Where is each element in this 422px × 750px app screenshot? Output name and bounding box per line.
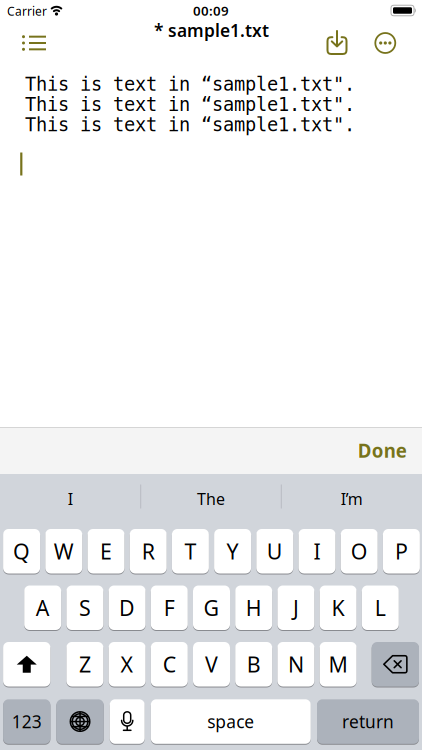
staticText: P <box>395 537 408 565</box>
button[interactable]: U <box>256 529 293 573</box>
button[interactable]: K <box>320 585 357 630</box>
button[interactable]: space <box>151 699 311 744</box>
staticText: I <box>313 537 320 565</box>
staticText: This is text in “sample1.txt". <box>25 114 355 135</box>
button[interactable]: Dictate <box>110 699 145 744</box>
staticText: H <box>246 594 262 622</box>
staticText: Z <box>79 650 91 678</box>
staticText: space <box>207 710 254 733</box>
button[interactable]: The <box>146 479 276 519</box>
button[interactable]: I <box>5 479 135 519</box>
button[interactable]: A <box>24 585 61 630</box>
staticText: J <box>293 594 299 622</box>
staticText: E <box>100 537 112 565</box>
button[interactable]: Shift <box>3 642 50 686</box>
staticText: G <box>203 594 219 622</box>
staticText: This is text in “sample1.txt". <box>25 94 355 115</box>
button[interactable]: return <box>317 699 419 744</box>
button[interactable]: P <box>383 529 420 573</box>
button[interactable]: C <box>151 642 188 686</box>
button[interactable]: D <box>109 585 146 630</box>
staticText: K <box>332 594 345 622</box>
staticText: Y <box>227 537 239 565</box>
staticText: L <box>375 594 386 622</box>
staticText: O <box>351 537 368 565</box>
button[interactable]: O <box>341 529 378 573</box>
button[interactable]: Delete <box>372 642 419 686</box>
staticText: F <box>164 594 175 622</box>
staticText: R <box>142 537 155 565</box>
button[interactable]: W <box>45 529 82 573</box>
staticText: return <box>342 710 394 733</box>
staticText: X <box>121 650 134 678</box>
button[interactable]: V <box>193 642 230 686</box>
staticText: N <box>288 650 304 678</box>
button[interactable]: M <box>320 642 357 686</box>
staticText: Q <box>13 537 30 565</box>
button[interactable]: F <box>151 585 188 630</box>
staticText: U <box>267 537 283 565</box>
staticText: This is text in “sample1.txt". <box>25 74 355 95</box>
staticText: D <box>119 594 135 622</box>
button[interactable]: 123 <box>3 699 50 744</box>
staticText: 123 <box>12 710 42 733</box>
button[interactable]: File list <box>16 28 52 57</box>
staticText: The <box>197 488 225 509</box>
button[interactable]: Y <box>214 529 251 573</box>
button[interactable]: More <box>370 28 400 58</box>
staticText: * sample1.txt <box>154 19 269 42</box>
button[interactable]: H <box>235 585 272 630</box>
button[interactable]: I’m <box>287 479 417 519</box>
button[interactable]: S <box>66 585 103 630</box>
staticText: C <box>163 650 176 678</box>
staticText: A <box>36 594 50 622</box>
button[interactable]: T <box>172 529 209 573</box>
staticText: T <box>184 537 196 565</box>
staticText: I’m <box>341 488 363 509</box>
staticText: V <box>205 650 218 678</box>
staticText: 00:09 <box>193 2 229 19</box>
button[interactable]: Done <box>346 427 419 474</box>
staticText: Done <box>358 438 407 463</box>
button[interactable]: R <box>130 529 167 573</box>
button[interactable]: N <box>277 642 314 686</box>
button[interactable]: X <box>109 642 146 686</box>
button[interactable]: E <box>87 529 124 573</box>
button[interactable]: Z <box>66 642 103 686</box>
staticText: I <box>68 488 73 509</box>
button[interactable]: B <box>235 642 272 686</box>
staticText: S <box>79 594 91 622</box>
button[interactable]: Q <box>3 529 40 573</box>
staticText: M <box>329 650 348 678</box>
button[interactable]: G <box>193 585 230 630</box>
button[interactable]: I <box>298 529 335 573</box>
staticText: W <box>54 537 74 565</box>
staticText: Carrier <box>7 3 47 19</box>
button[interactable]: L <box>362 585 399 630</box>
button[interactable]: Save <box>321 25 352 60</box>
button[interactable]: Next keyboard <box>56 699 104 744</box>
staticText: B <box>247 650 261 678</box>
button[interactable]: J <box>277 585 314 630</box>
